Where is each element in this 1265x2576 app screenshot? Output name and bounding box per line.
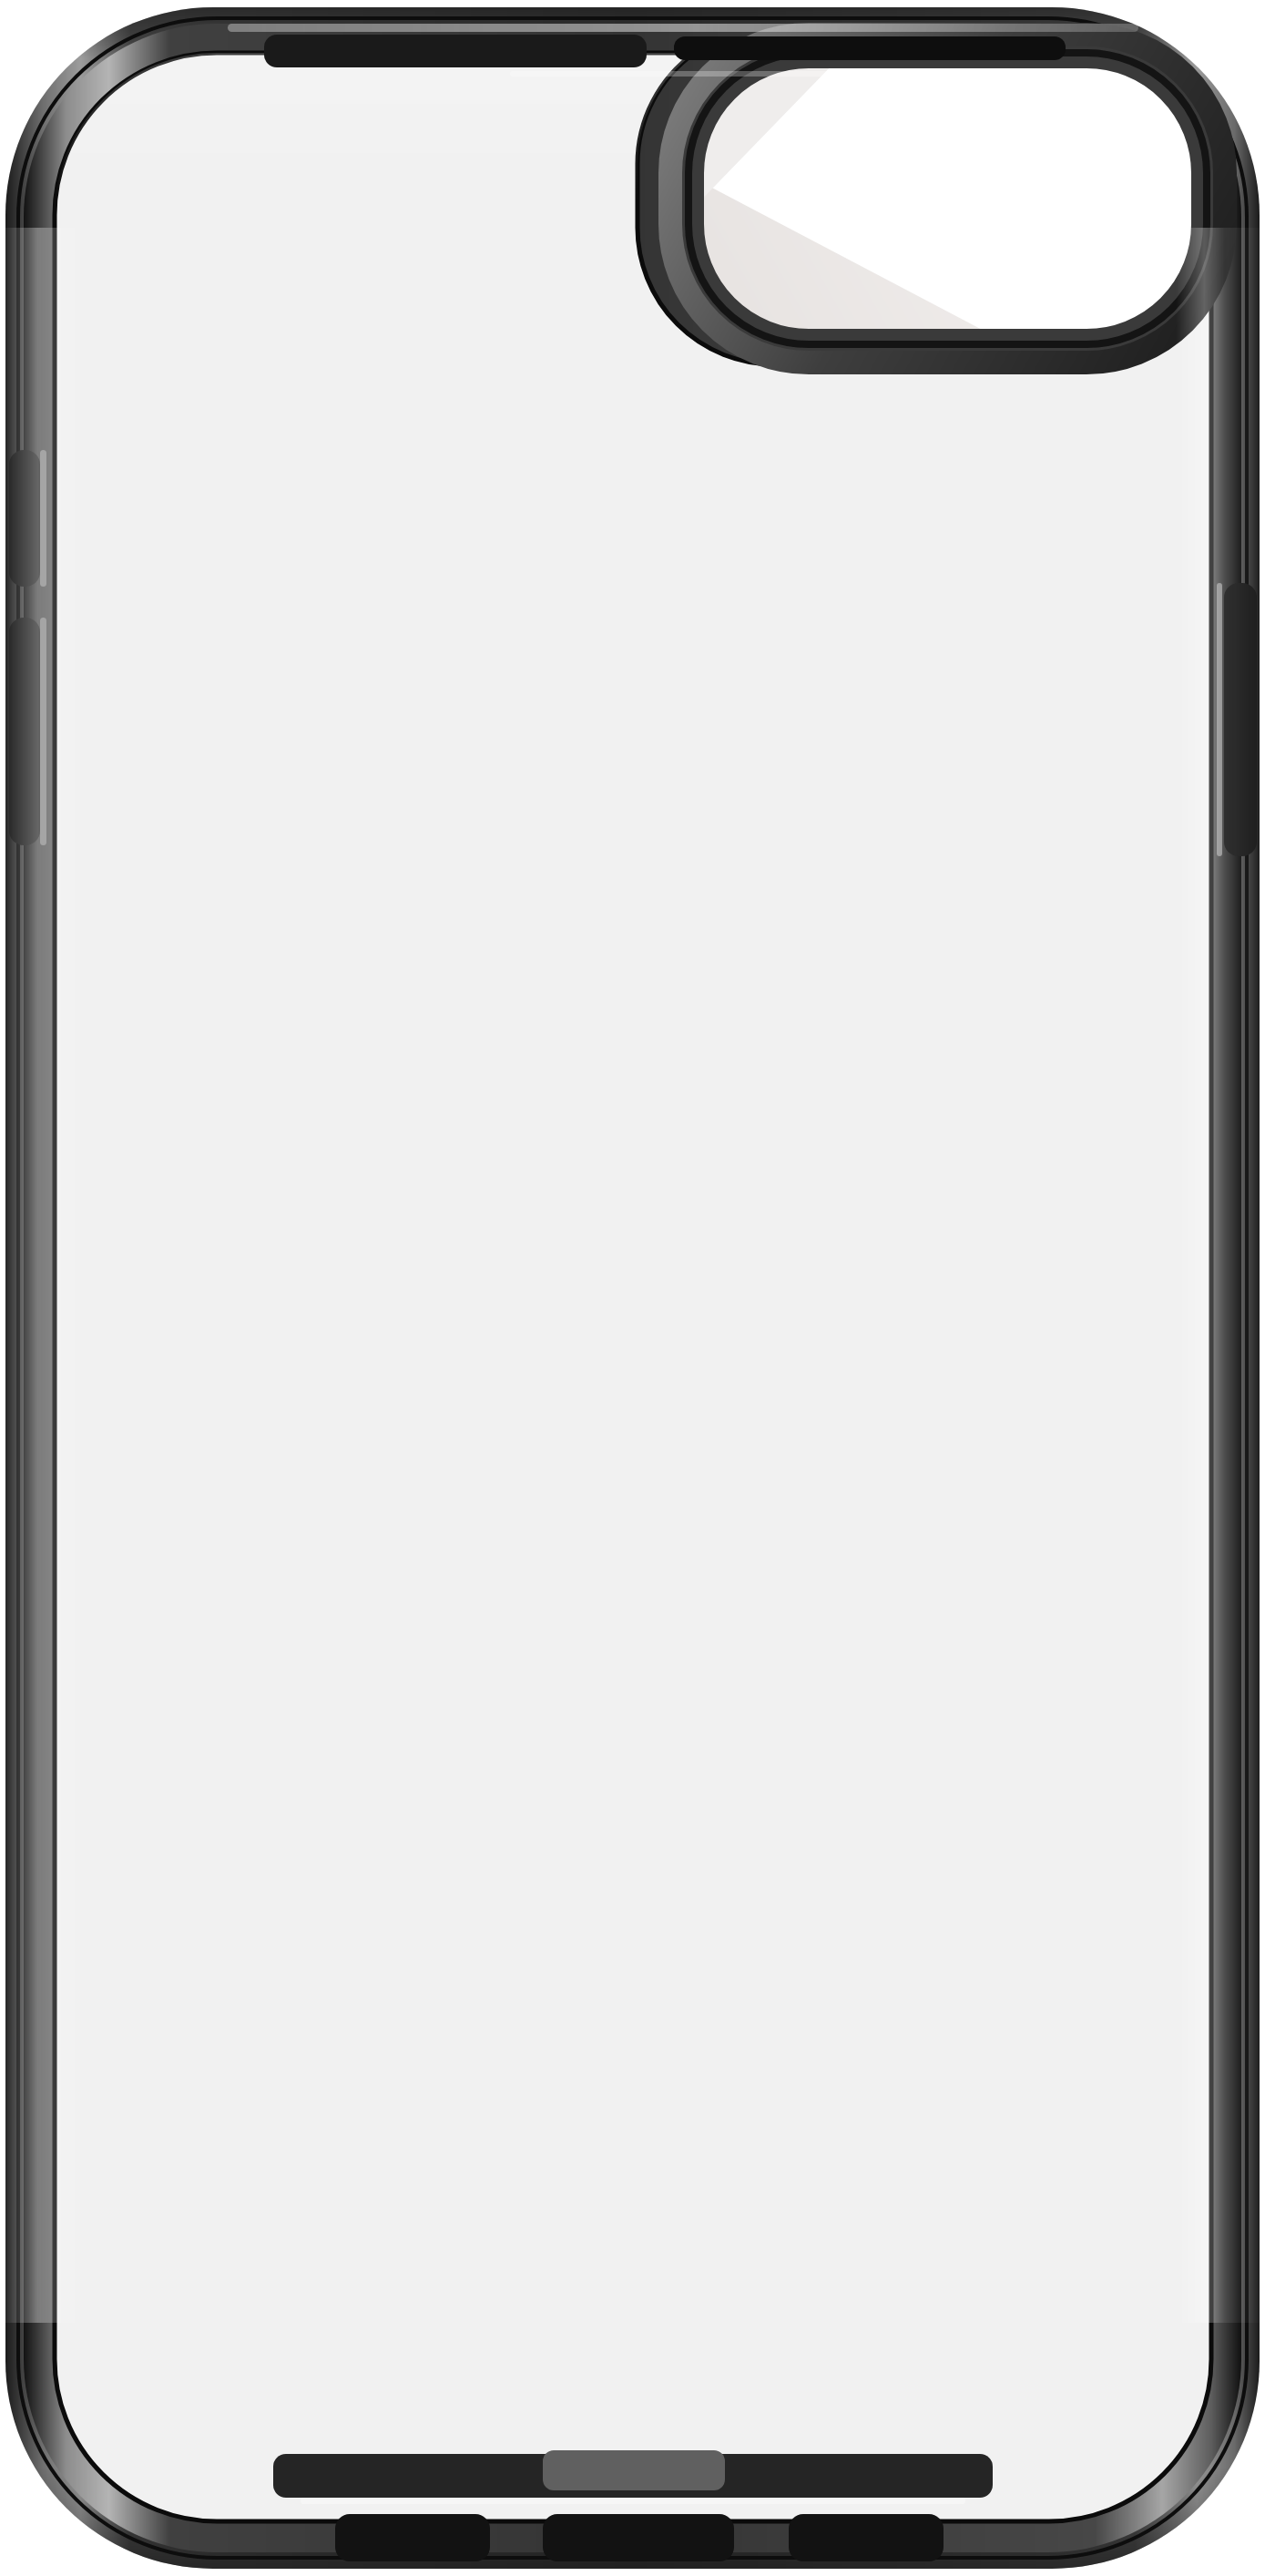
button[interactable]: Clear phone case, black bumper [0,0,1265,2576]
